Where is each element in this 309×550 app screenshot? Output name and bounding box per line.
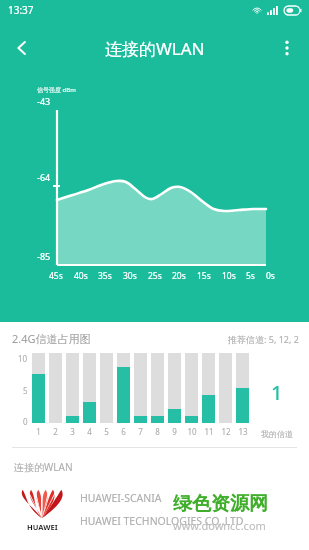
- staticText: 2: [53, 426, 58, 437]
- staticText: 2.4G信道占用图: [12, 331, 91, 346]
- staticText: 绿色资源网: [173, 492, 268, 516]
- staticText: 13: [238, 426, 248, 437]
- button[interactable]: More options: [265, 26, 309, 70]
- staticText: 5: [23, 385, 28, 396]
- staticText: 15s: [197, 270, 211, 282]
- staticText: 我的信道: [261, 429, 293, 439]
- staticText: 8: [155, 426, 160, 437]
- staticText: 5: [104, 426, 109, 437]
- staticText: 10s: [222, 270, 236, 282]
- staticText: www.downcc.com: [173, 518, 266, 533]
- staticText: 10: [187, 426, 197, 437]
- staticText: 10: [18, 353, 28, 364]
- staticText: 40s: [74, 270, 88, 282]
- staticText: 0s: [266, 270, 275, 282]
- staticText: 45s: [49, 270, 63, 282]
- staticText: 连接的WLAN: [14, 460, 73, 474]
- staticText: HUAWEI-SCANIA: [80, 491, 162, 505]
- button[interactable]: HUAWEI: [0, 484, 309, 540]
- staticText: 13:37: [8, 3, 34, 17]
- button[interactable]: [236, 353, 249, 423]
- staticText: HUAWEI TECHNOLOGIES CO.,LTD: [80, 514, 244, 528]
- staticText: 25s: [148, 270, 162, 282]
- button[interactable]: [32, 353, 45, 423]
- staticText: 7: [138, 426, 143, 437]
- button[interactable]: [117, 353, 130, 423]
- staticText: 6: [121, 426, 126, 437]
- staticText: 11: [204, 426, 214, 437]
- button[interactable]: [134, 353, 147, 423]
- staticText: 30s: [123, 270, 137, 282]
- button[interactable]: [66, 353, 79, 423]
- button[interactable]: [83, 353, 96, 423]
- staticText: 4: [87, 426, 92, 437]
- staticText: 推荐信道: 5, 12, 2: [228, 333, 299, 345]
- staticText: 35s: [98, 270, 112, 282]
- staticText: 1: [271, 379, 283, 406]
- button[interactable]: Back: [0, 26, 44, 70]
- button[interactable]: [168, 353, 181, 423]
- staticText: -85: [37, 250, 51, 262]
- staticText: 12: [221, 426, 231, 437]
- button[interactable]: [202, 353, 215, 423]
- staticText: -64: [37, 171, 51, 183]
- staticText: HUAWEI: [27, 522, 58, 532]
- staticText: 20s: [172, 270, 186, 282]
- staticText: 1: [36, 426, 41, 437]
- button[interactable]: [185, 353, 198, 423]
- staticText: 3: [70, 426, 75, 437]
- button[interactable]: [151, 353, 164, 423]
- staticText: 5s: [246, 270, 255, 282]
- staticText: 0: [23, 416, 28, 427]
- staticText: 信号强度 dBm: [37, 86, 76, 94]
- staticText: -43: [37, 95, 51, 107]
- staticText: 连接的WLAN: [105, 37, 205, 60]
- staticText: 9: [172, 426, 177, 437]
